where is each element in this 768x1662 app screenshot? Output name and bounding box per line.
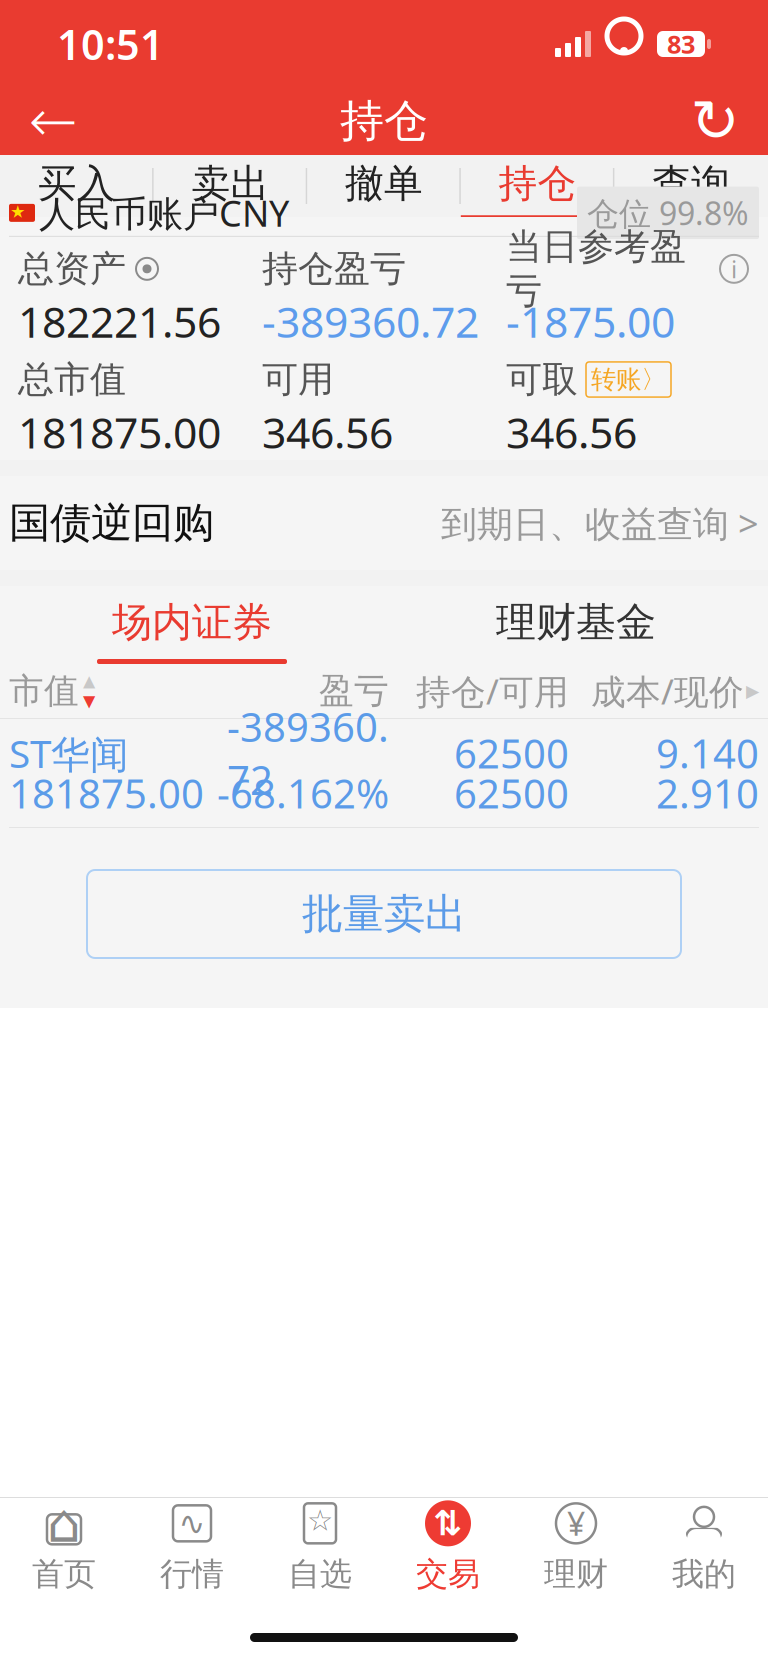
staticText: 行情 <box>160 1554 224 1594</box>
button[interactable]: 场内证券 <box>0 586 384 664</box>
staticText: 总市值 <box>18 357 126 402</box>
staticText: -1875.00 <box>506 293 675 349</box>
staticText: 理财基金 <box>496 598 656 647</box>
staticText: ▼ <box>83 692 95 710</box>
staticText: 持仓 <box>499 160 577 207</box>
button[interactable]: 说明 <box>718 253 750 285</box>
staticText: 181875.00 <box>9 766 204 819</box>
staticText: 总资产 <box>18 247 126 291</box>
staticText: 市值 <box>9 670 79 712</box>
staticText: 持仓盈亏 <box>262 247 406 291</box>
button[interactable]: 查询 <box>614 155 768 217</box>
staticText: ¥ <box>567 1502 585 1545</box>
staticText: -68.162% <box>217 766 389 819</box>
staticText: 成本/现价 <box>591 668 744 714</box>
button[interactable]: 显示或隐藏金额 <box>134 256 160 282</box>
staticText: 盈亏 <box>319 670 389 712</box>
staticText: ST华闻 <box>9 727 129 779</box>
button[interactable]: 转账〉 <box>586 362 671 397</box>
staticText: 首页 <box>32 1554 96 1594</box>
staticText: 自选 <box>288 1554 352 1594</box>
button[interactable]: 卖出 <box>154 155 307 217</box>
button[interactable]: 刷新 <box>667 73 763 169</box>
staticText: 2.910 <box>656 766 759 819</box>
staticText: 可用 <box>262 357 334 402</box>
staticText: ★ <box>10 202 26 222</box>
staticText: 我的 <box>672 1554 736 1594</box>
staticText: 撤单 <box>345 160 423 207</box>
staticText: ← <box>28 88 77 154</box>
staticText: 到期日、收益查询 > <box>441 499 759 547</box>
button[interactable]: 我的 <box>640 1498 768 1596</box>
staticText: ⇅ <box>433 1504 462 1543</box>
staticText: 买入 <box>38 160 116 207</box>
button[interactable]: 批量卖出 <box>87 870 681 958</box>
staticText: 场内证券 <box>112 598 272 647</box>
staticText: 346.56 <box>506 403 637 460</box>
button[interactable]: ⇅ <box>384 1498 512 1596</box>
button[interactable]: 国债逆回购 <box>0 476 768 570</box>
staticText: ▶ <box>746 681 759 701</box>
button[interactable]: ☆ <box>256 1498 384 1596</box>
staticText: 批量卖出 <box>302 889 466 939</box>
staticText: 62500 <box>454 726 569 779</box>
staticText: 181875.00 <box>18 403 221 460</box>
button[interactable]: ∿ <box>128 1498 256 1596</box>
button[interactable]: 买入 <box>0 155 154 217</box>
button[interactable]: ⌂ <box>0 1498 128 1596</box>
staticText: 10:51 <box>57 17 164 71</box>
staticText: ⌂ <box>47 1493 81 1554</box>
staticText: 理财 <box>544 1554 608 1594</box>
staticText: 持仓 <box>340 94 428 148</box>
staticText: 9.140 <box>656 726 759 779</box>
staticText: i <box>731 253 737 285</box>
staticText: 83 <box>667 27 695 61</box>
staticText: 查询 <box>652 160 730 207</box>
staticText: -389360.72 <box>262 293 479 349</box>
staticText: 卖出 <box>191 160 269 207</box>
staticText: ↻ <box>690 88 739 154</box>
button[interactable]: 撤单 <box>307 155 461 217</box>
staticText: ▲ <box>83 672 95 690</box>
button[interactable]: 理财基金 <box>384 586 768 664</box>
staticText: 人民币账户CNY <box>39 189 289 237</box>
staticText: 346.56 <box>262 403 393 460</box>
staticText: 交易 <box>416 1554 480 1594</box>
button[interactable]: ¥ <box>512 1498 640 1596</box>
button[interactable]: ST华闻 <box>0 719 768 828</box>
staticText: 转账〉 <box>591 364 666 395</box>
staticText: -389360.72 <box>227 700 389 806</box>
staticText: 持仓/可用 <box>416 668 569 714</box>
staticText: 当日参考盈亏 <box>506 225 686 313</box>
staticText: ☆ <box>307 1504 333 1537</box>
button[interactable]: 持仓 <box>461 155 614 217</box>
staticText: 国债逆回购 <box>9 498 214 548</box>
button[interactable]: 返回 <box>5 73 101 169</box>
staticText: 仓位 99.8% <box>587 192 749 234</box>
staticText: 可取 <box>506 357 578 402</box>
staticText: 182221.56 <box>18 293 221 349</box>
staticText: ∿ <box>178 1505 205 1541</box>
staticText: 62500 <box>454 766 569 819</box>
